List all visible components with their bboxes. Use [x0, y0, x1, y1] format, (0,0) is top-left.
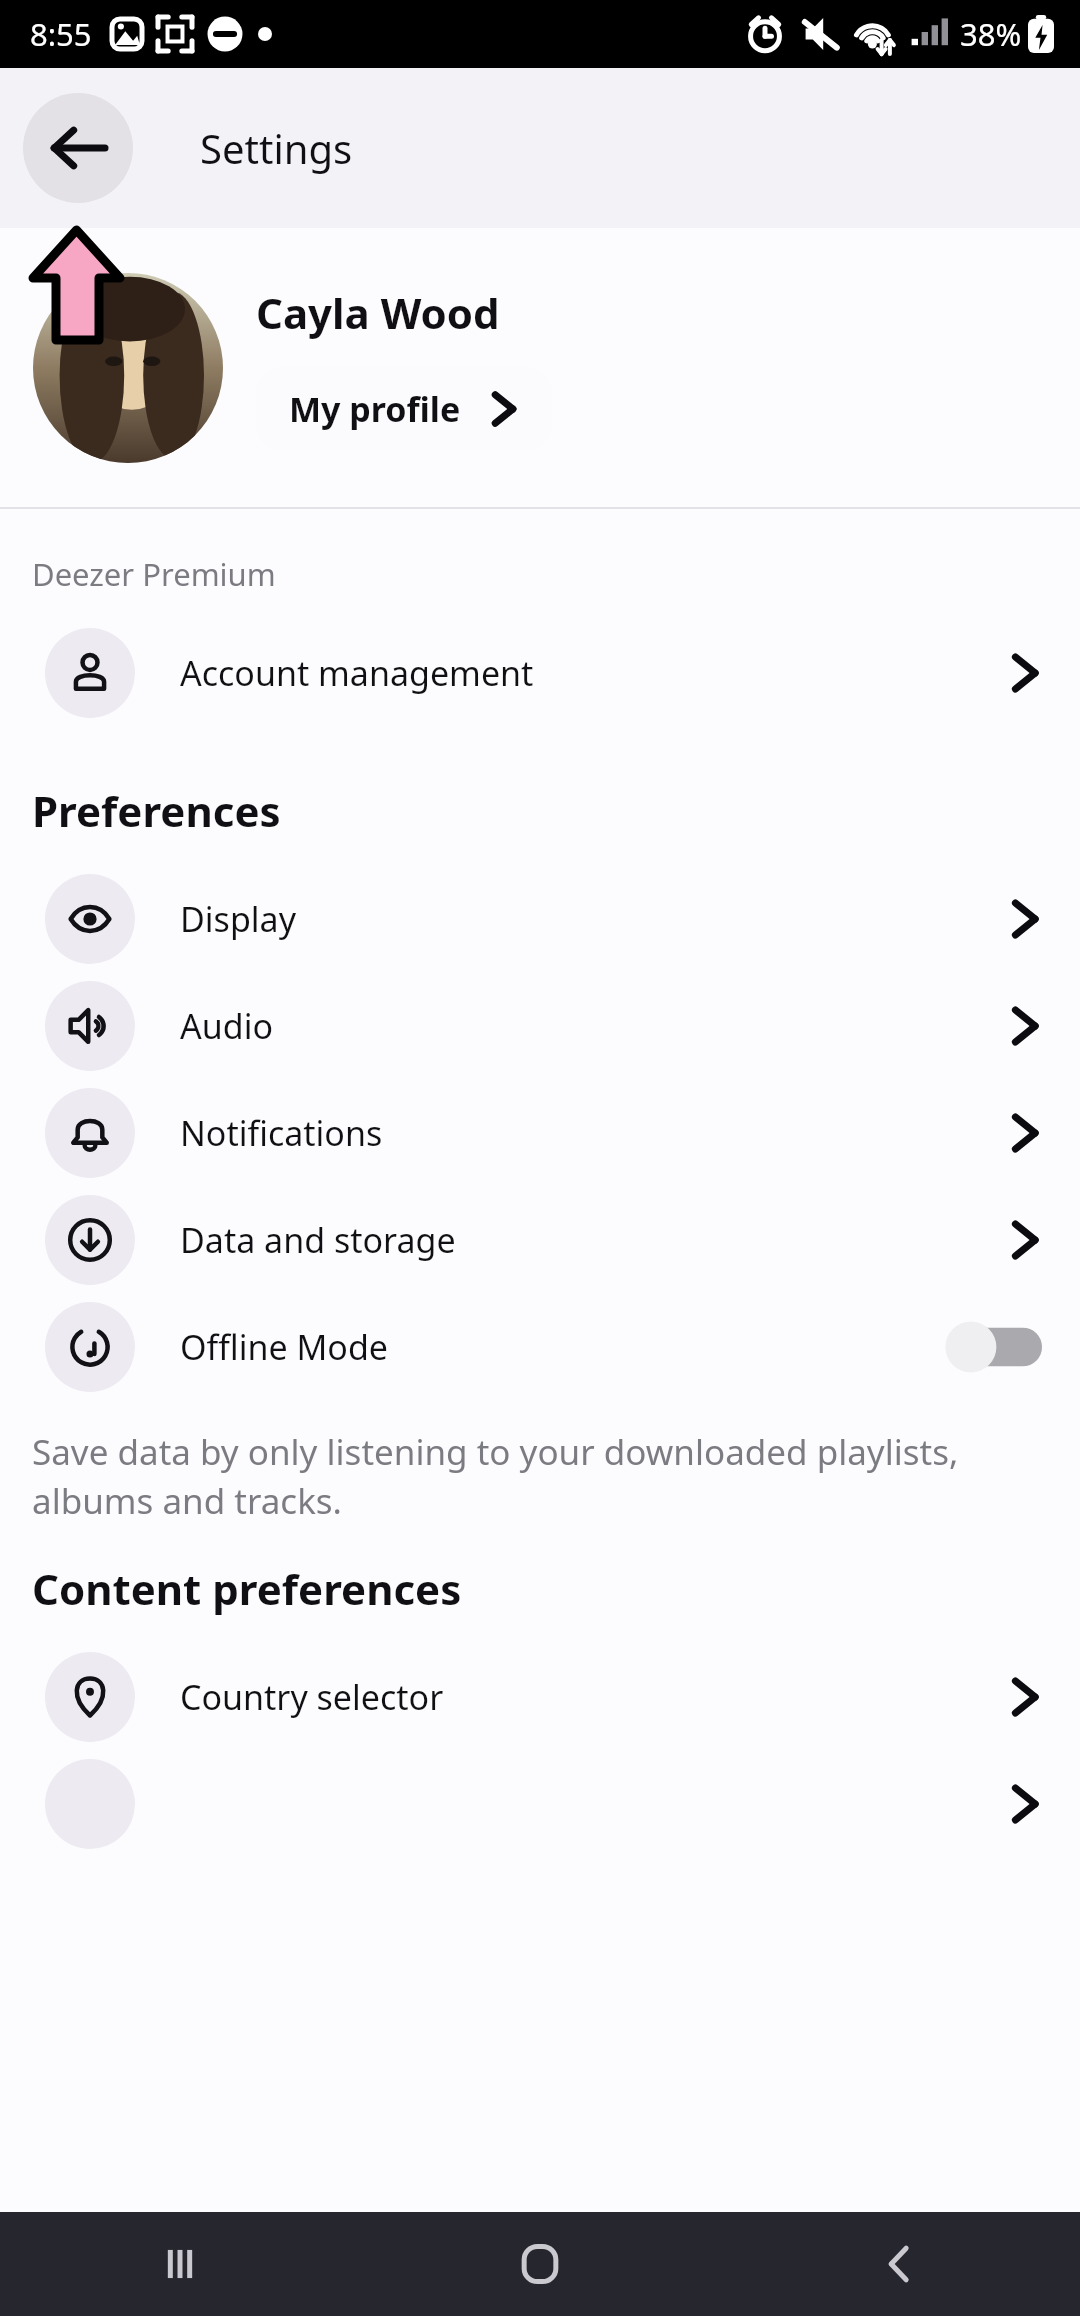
staticText: My profile: [289, 386, 461, 432]
staticText: Save data by only listening to your down…: [32, 1428, 1028, 1524]
button[interactable]: Account management: [0, 619, 1080, 726]
staticText: 38%: [960, 13, 1022, 55]
button[interactable]: Offline Mode toggle: [948, 1325, 1042, 1369]
staticText: Data and storage: [180, 1217, 456, 1263]
staticText: Display: [180, 896, 296, 942]
button[interactable]: Recent apps: [0, 2212, 360, 2316]
staticText: Country selector: [180, 1674, 444, 1720]
staticText: Audio: [180, 1003, 273, 1049]
button[interactable]: Country selector: [0, 1643, 1080, 1750]
staticText: Account management: [180, 650, 534, 696]
staticText: Content preferences: [32, 1560, 462, 1617]
button[interactable]: [0, 1750, 1080, 1857]
staticText: Cayla Wood: [256, 284, 500, 341]
button[interactable]: My profile: [257, 367, 551, 451]
button[interactable]: Back: [720, 2212, 1080, 2316]
staticText: Notifications: [180, 1110, 383, 1156]
button[interactable]: Notifications: [0, 1079, 1080, 1186]
button[interactable]: Offline Mode: [0, 1293, 1080, 1400]
button[interactable]: Display: [0, 865, 1080, 972]
button[interactable]: Home: [360, 2212, 720, 2316]
button[interactable]: Audio: [0, 972, 1080, 1079]
staticText: Preferences: [32, 782, 281, 839]
button[interactable]: Back: [23, 93, 133, 203]
staticText: Deezer Premium: [32, 553, 276, 595]
button[interactable]: Data and storage: [0, 1186, 1080, 1293]
staticText: Offline Mode: [180, 1324, 389, 1370]
staticText: 8:55: [30, 13, 92, 55]
staticText: Settings: [200, 121, 353, 175]
